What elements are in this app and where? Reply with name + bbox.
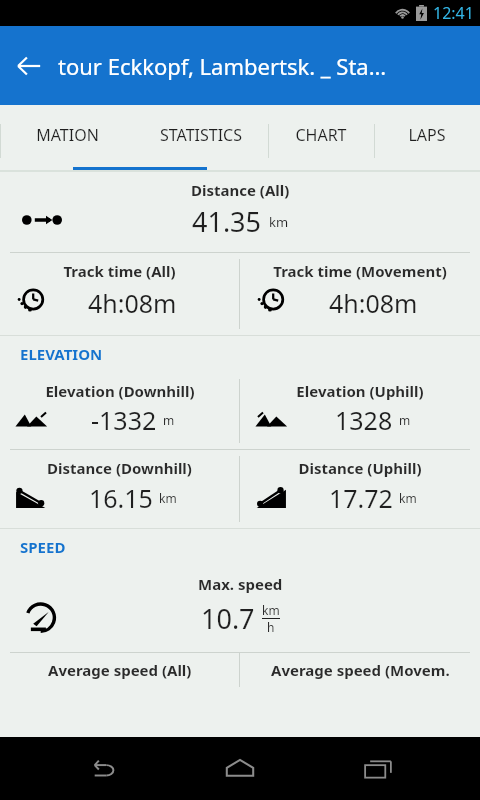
button[interactable]: Distance (Uphill) — [240, 450, 480, 528]
button[interactable]: MATION — [0, 105, 134, 172]
button[interactable]: STATISTICS — [134, 105, 268, 172]
staticText: Max. speed — [198, 574, 283, 594]
staticText: h — [267, 619, 275, 635]
staticText: Track time (Movement) — [273, 261, 447, 281]
staticText: SPEED — [20, 537, 66, 557]
button[interactable]: Track time (All) — [0, 253, 239, 335]
staticText: 1328 — [335, 403, 393, 437]
staticText: km — [269, 213, 289, 231]
button[interactable]: Elevation (Uphill) — [240, 373, 480, 449]
button[interactable]: Max. speed — [0, 566, 480, 652]
button[interactable]: Back — [68, 737, 138, 800]
staticText: Average speed (Movem. — [271, 660, 450, 680]
staticText: Distance (Uphill) — [298, 458, 422, 478]
staticText: km — [399, 490, 417, 506]
button[interactable]: Track time (Movement) — [240, 253, 480, 335]
staticText: 12:41 — [433, 2, 474, 24]
staticText: MATION — [36, 124, 99, 146]
staticText: 4h:08m — [329, 286, 418, 320]
staticText: Elevation (Uphill) — [296, 381, 424, 401]
staticText: km — [262, 602, 280, 618]
staticText: ELEVATION — [20, 344, 103, 364]
button[interactable]: CHART — [268, 105, 374, 172]
staticText: Distance (Downhill) — [47, 458, 192, 478]
button[interactable]: Distance (All) — [0, 172, 480, 252]
staticText: m — [399, 412, 411, 428]
staticText: 16.15 — [89, 481, 153, 515]
staticText: CHART — [295, 124, 347, 146]
button[interactable]: LAPS — [374, 105, 480, 172]
staticText: Track time (All) — [63, 261, 176, 281]
staticText: LAPS — [408, 124, 446, 146]
staticText: tour Eckkopf, Lambertsk. _ Sta… — [58, 51, 476, 81]
staticText: m — [163, 412, 175, 428]
button[interactable]: Home — [205, 737, 275, 800]
staticText: STATISTICS — [160, 124, 242, 146]
staticText: 10.7 — [201, 600, 255, 637]
staticText: 17.72 — [329, 481, 393, 515]
button[interactable]: Recent apps — [343, 737, 413, 800]
staticText: 4h:08m — [88, 286, 177, 320]
staticText: Elevation (Downhill) — [45, 381, 195, 401]
staticText: -1332 — [91, 403, 157, 437]
staticText: Average speed (All) — [48, 660, 192, 680]
staticText: km — [159, 490, 177, 506]
staticText: 41.35 — [192, 203, 262, 240]
button[interactable]: Elevation (Downhill) — [0, 373, 239, 449]
button[interactable]: Distance (Downhill) — [0, 450, 239, 528]
staticText: Distance (All) — [191, 180, 290, 200]
button[interactable]: Back — [0, 37, 58, 95]
